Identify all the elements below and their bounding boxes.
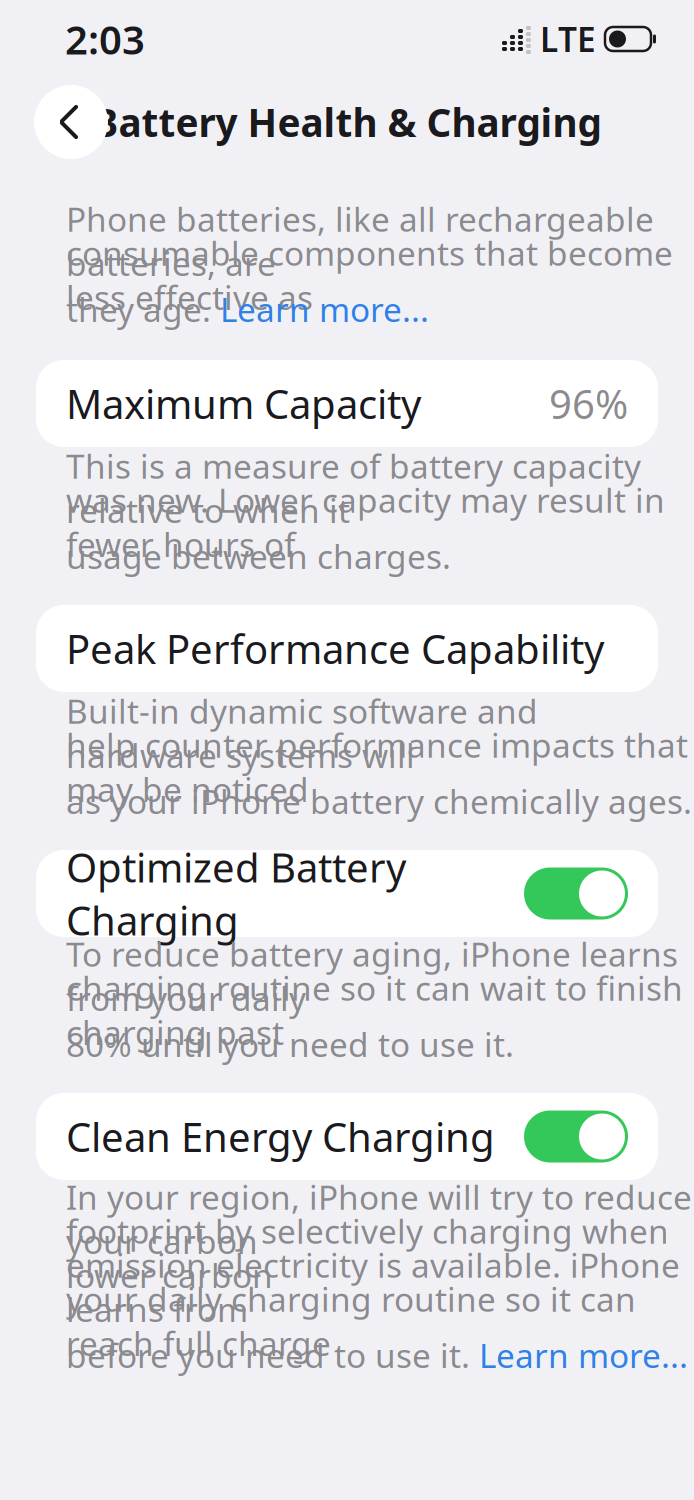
- button[interactable]: Optimized Battery Charging: [36, 850, 658, 937]
- staticText: your daily charging routine so it can re…: [66, 1277, 636, 1365]
- staticText: Phone batteries, like all rechargeable b…: [66, 197, 654, 285]
- staticText: Optimized Battery Charging: [66, 840, 406, 947]
- button[interactable]: Learn more...: [220, 287, 429, 331]
- staticText: consumable components that become less e…: [66, 231, 673, 319]
- staticText: Learn more...: [220, 287, 429, 331]
- staticText: usage between charges.: [66, 534, 451, 578]
- staticText: Peak Performance Capability: [66, 622, 604, 675]
- staticText: Clean Energy Charging: [66, 1110, 495, 1163]
- staticText: Built-in dynamic software and hardware s…: [66, 689, 538, 777]
- button[interactable]: Maximum Capacity: [36, 360, 658, 447]
- button[interactable]: Back: [34, 85, 108, 159]
- staticText: as your iPhone battery chemically ages.: [66, 779, 692, 823]
- staticText: 2:03: [65, 12, 145, 65]
- button[interactable]: Peak Performance Capability: [36, 605, 658, 692]
- staticText: they age.: [66, 287, 220, 331]
- staticText: To reduce battery aging, iPhone learns f…: [66, 932, 678, 1020]
- staticText: In your region, iPhone will try to reduc…: [66, 1175, 692, 1263]
- staticText: Learn more...: [479, 1333, 688, 1377]
- staticText: was new. Lower capacity may result in fe…: [66, 478, 665, 566]
- staticText: footprint by selectively charging when l…: [66, 1209, 669, 1297]
- staticText: emission electricity is available. iPhon…: [66, 1243, 680, 1331]
- staticText: 80% until you need to use it.: [66, 1022, 514, 1066]
- button[interactable]: Learn more...: [479, 1333, 688, 1377]
- staticText: LTE: [540, 17, 596, 61]
- staticText: charging routine so it can wait to finis…: [66, 966, 683, 1054]
- button[interactable]: Clean Energy Charging: [36, 1093, 658, 1180]
- staticText: 96%: [549, 377, 628, 430]
- staticText: Battery Health & Charging: [92, 96, 601, 148]
- staticText: Maximum Capacity: [66, 377, 421, 430]
- staticText: help counter performance impacts that ma…: [66, 723, 688, 811]
- staticText: This is a measure of battery capacity re…: [66, 444, 641, 532]
- staticText: before you need to use it.: [66, 1333, 479, 1377]
